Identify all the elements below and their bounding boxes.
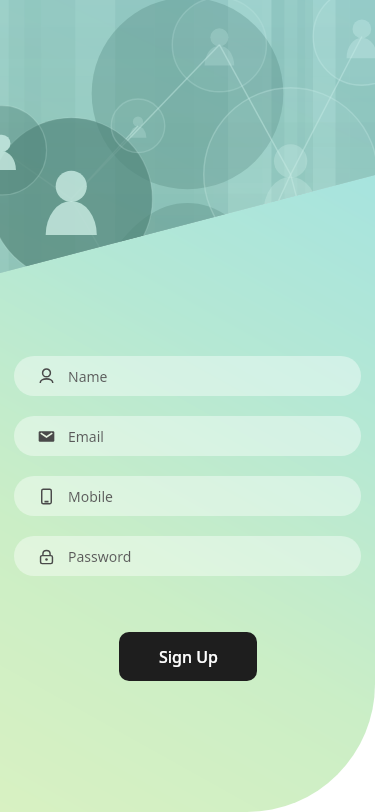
staticText: Name bbox=[68, 367, 108, 386]
staticText: Mobile bbox=[68, 487, 113, 506]
staticText: Password bbox=[68, 547, 132, 566]
button[interactable]: Password bbox=[14, 536, 361, 576]
other: Password bbox=[38, 548, 55, 565]
button[interactable]: Name bbox=[14, 356, 361, 396]
staticText: Email bbox=[68, 427, 104, 446]
other: Mobile bbox=[38, 488, 55, 505]
button[interactable]: Email bbox=[14, 416, 361, 456]
button[interactable]: Sign Up bbox=[119, 632, 257, 681]
other: Email bbox=[38, 428, 55, 445]
staticText: Sign Up bbox=[159, 646, 218, 668]
button[interactable]: Mobile bbox=[14, 476, 361, 516]
other: Name bbox=[38, 368, 55, 385]
